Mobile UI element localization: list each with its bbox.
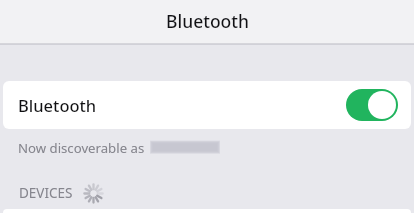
staticText: Bluetooth [18, 94, 97, 116]
other: Searching for devices [84, 184, 103, 203]
button[interactable]: Bluetooth [3, 81, 411, 129]
staticText: Now discoverable as [18, 139, 145, 155]
staticText: DEVICES [19, 184, 73, 202]
button[interactable]: Bluetooth on [346, 89, 398, 121]
staticText: Bluetooth [166, 9, 249, 33]
